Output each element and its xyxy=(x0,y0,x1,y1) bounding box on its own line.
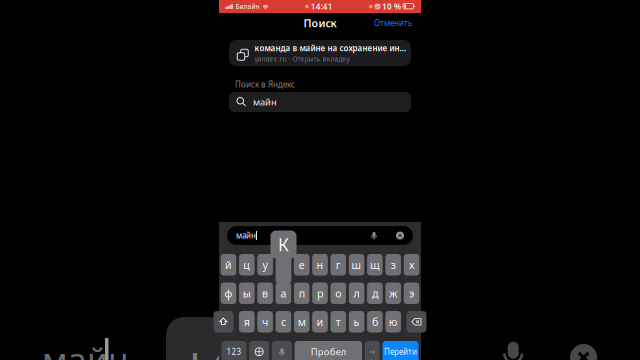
staticText: п xyxy=(299,286,305,300)
button[interactable]: Сменить язык xyxy=(249,341,269,360)
button[interactable]: л xyxy=(349,282,364,304)
staticText: щ xyxy=(370,258,380,272)
button[interactable]: о xyxy=(330,282,346,304)
staticText: Отменить xyxy=(374,18,412,28)
button[interactable]: Далее xyxy=(365,341,380,360)
staticText: д xyxy=(372,286,378,300)
staticText: 10 % xyxy=(382,1,401,12)
staticText: р xyxy=(317,286,323,300)
button[interactable]: г xyxy=(330,254,346,275)
button[interactable]: Отменить xyxy=(371,16,415,30)
staticText: а xyxy=(280,286,286,300)
staticText: 123 xyxy=(226,346,241,357)
button[interactable]: ц xyxy=(239,254,255,275)
button[interactable]: р xyxy=(312,282,328,304)
staticText: м xyxy=(298,315,306,329)
staticText: 14:41 xyxy=(311,1,333,12)
button[interactable]: ж xyxy=(385,282,401,304)
button[interactable]: и xyxy=(312,311,328,332)
staticText: ж xyxy=(389,286,397,300)
button[interactable]: е xyxy=(294,254,309,275)
button[interactable]: б xyxy=(367,311,383,332)
button[interactable]: ч xyxy=(257,311,273,332)
staticText: л xyxy=(354,286,360,300)
button[interactable]: а xyxy=(276,282,291,304)
button[interactable]: с xyxy=(276,311,291,332)
staticText: yandex.ru · Открыть вкладку xyxy=(254,54,349,63)
button[interactable]: п xyxy=(294,282,309,304)
staticText: т xyxy=(336,315,341,329)
staticText: й xyxy=(225,258,232,272)
button[interactable]: э xyxy=(404,282,419,304)
button[interactable]: Перейти xyxy=(382,341,418,360)
staticText: ь xyxy=(354,315,360,329)
button[interactable]: 123 xyxy=(221,341,246,360)
staticText: К xyxy=(186,330,227,360)
button[interactable]: Удалить xyxy=(406,311,426,332)
button[interactable]: Диктовка xyxy=(272,341,292,360)
button[interactable]: н xyxy=(312,254,328,275)
staticText: Поиск xyxy=(303,16,336,30)
staticText: Пробел xyxy=(311,346,346,358)
staticText: ф xyxy=(224,286,232,300)
button[interactable]: команда в майне на сохранение ин… xyxy=(229,40,411,66)
staticText: у xyxy=(263,258,268,272)
staticText: э xyxy=(409,286,414,300)
button[interactable]: я xyxy=(239,311,255,332)
button[interactable]: т xyxy=(330,311,346,332)
button[interactable]: у xyxy=(257,254,273,275)
staticText: ш xyxy=(352,258,362,272)
staticText: Билайн xyxy=(235,2,259,11)
button[interactable]: ы xyxy=(239,282,255,304)
button[interactable]: майн xyxy=(229,92,411,112)
button[interactable]: Shift xyxy=(214,311,234,332)
button[interactable]: х xyxy=(404,254,419,275)
staticText: з xyxy=(391,258,396,272)
button[interactable]: ь xyxy=(349,311,364,332)
button[interactable]: ю xyxy=(385,311,401,332)
button[interactable]: м xyxy=(294,311,309,332)
staticText: команда в майне на сохранение ин… xyxy=(254,43,406,53)
staticText: К xyxy=(278,233,289,256)
staticText: ч xyxy=(262,315,268,329)
staticText: и xyxy=(316,315,323,329)
button[interactable]: з xyxy=(385,254,401,275)
staticText: е xyxy=(299,258,305,272)
staticText: майн xyxy=(42,337,128,360)
staticText: ц xyxy=(243,258,250,272)
staticText: о xyxy=(335,286,341,300)
staticText: → xyxy=(369,347,376,356)
button[interactable]: ф xyxy=(221,282,236,304)
staticText: Поиск в Яндекс xyxy=(235,79,295,90)
staticText: х xyxy=(409,258,414,272)
button[interactable]: Пробел xyxy=(295,341,362,360)
button[interactable]: в xyxy=(257,282,273,304)
staticText: ы xyxy=(243,286,251,300)
staticText: н xyxy=(316,258,323,272)
staticText: Перейти xyxy=(384,346,417,357)
button[interactable]: щ xyxy=(367,254,383,275)
button[interactable]: д xyxy=(367,282,383,304)
button[interactable]: ш xyxy=(349,254,364,275)
staticText: я xyxy=(244,315,250,329)
staticText: майн xyxy=(253,96,277,108)
staticText: с xyxy=(281,315,286,329)
staticText: ю xyxy=(389,315,398,329)
button[interactable]: й xyxy=(221,254,236,275)
staticText: майн xyxy=(236,230,256,241)
staticText: г xyxy=(336,258,341,272)
staticText: в xyxy=(262,286,268,300)
staticText: б xyxy=(372,315,378,329)
